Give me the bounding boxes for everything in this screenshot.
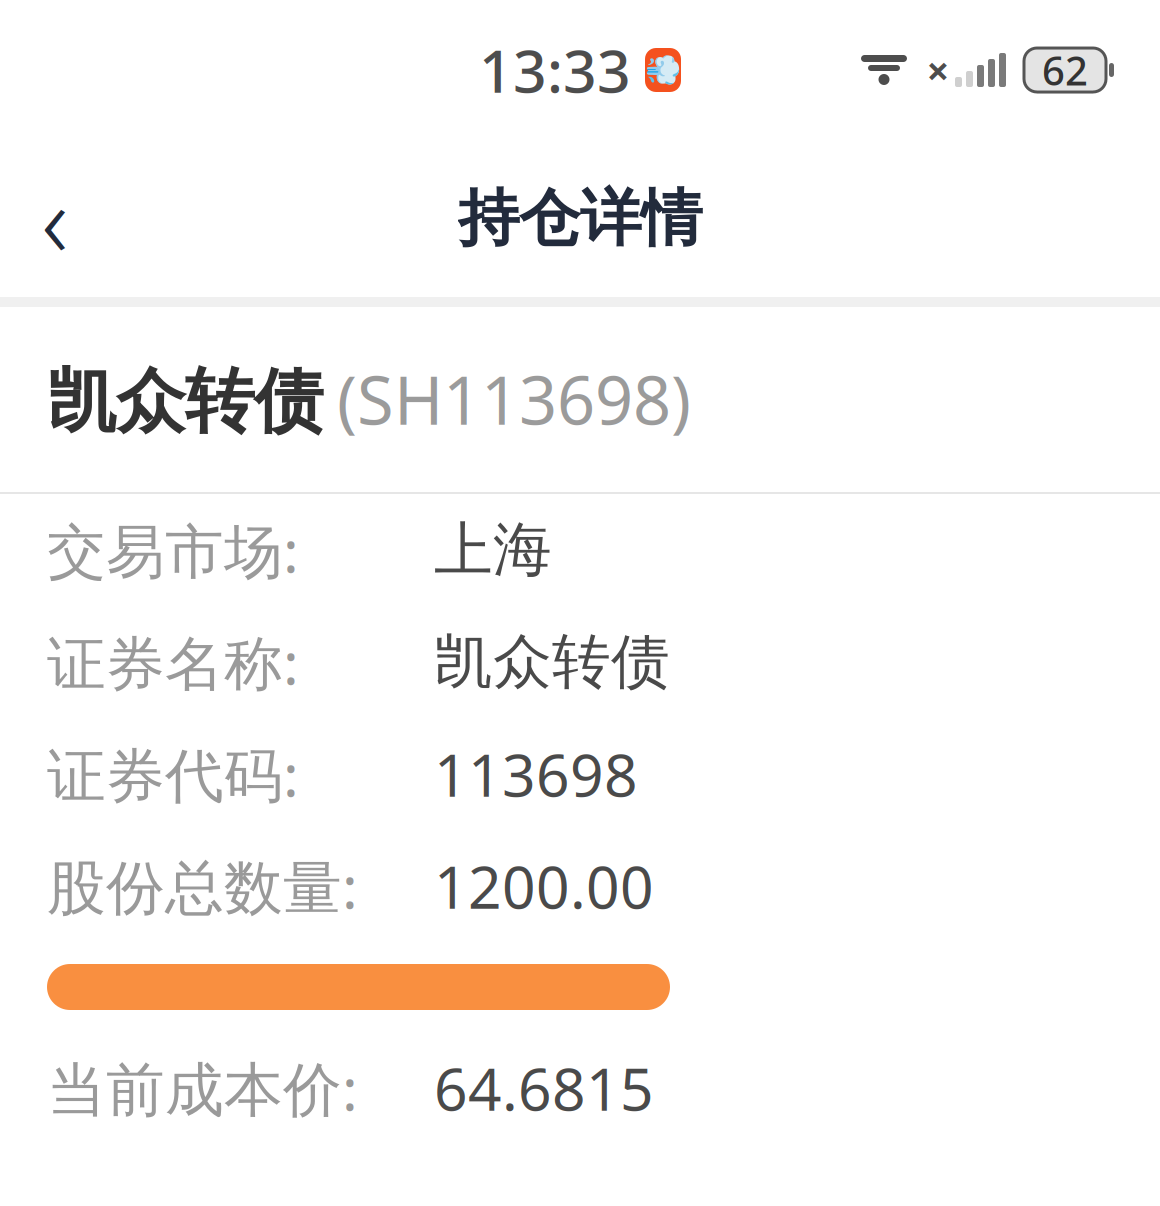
staticText: 证券名称: xyxy=(47,623,299,701)
staticText: 股份总数量: xyxy=(47,847,358,925)
staticText: 当前成本价: xyxy=(47,1049,358,1127)
staticText: 交易市场: xyxy=(47,511,299,589)
button[interactable]: Back xyxy=(0,163,110,273)
staticText: 💨 xyxy=(644,53,681,87)
staticText: 64.6815 xyxy=(434,1049,654,1127)
staticText: 1200.00 xyxy=(434,847,654,925)
staticText: × xyxy=(926,43,949,96)
staticText: 62 xyxy=(1042,43,1088,96)
staticText: 证券代码: xyxy=(47,735,299,813)
staticText: 持仓详情 xyxy=(458,181,702,256)
staticText: 13:33 xyxy=(479,31,631,109)
staticText: 凯众转债 xyxy=(434,626,670,698)
staticText: 113698 xyxy=(434,735,638,813)
staticText: (SH113698) xyxy=(337,355,691,443)
staticText: 凯众转债 xyxy=(47,359,323,444)
staticText: 上海 xyxy=(434,514,552,586)
staticText: ‹ xyxy=(41,151,68,286)
